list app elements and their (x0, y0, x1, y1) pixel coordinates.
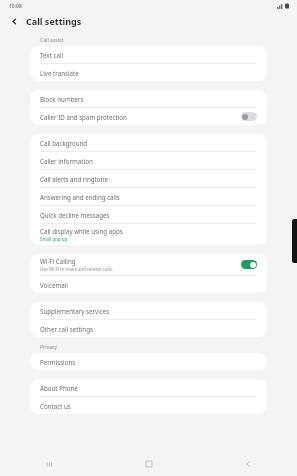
button[interactable]: Permissions (30, 353, 267, 370)
button[interactable]: Contact us (30, 397, 267, 414)
staticText: Supplementary services (40, 307, 110, 315)
staticText: Quick decline messages (40, 211, 110, 219)
staticText: Live translate (40, 69, 79, 77)
staticText: 10:08 (9, 3, 22, 10)
button[interactable]: Answering and ending calls (30, 188, 267, 205)
button[interactable]: Call background (30, 134, 267, 151)
button[interactable]: Other call settings (30, 320, 267, 337)
staticText: Small pop-up (40, 236, 68, 242)
button[interactable]: Quick decline messages (30, 206, 267, 223)
button[interactable]: Back (7, 14, 22, 29)
button[interactable]: Text call (30, 46, 267, 63)
button[interactable]: Voicemail (30, 276, 267, 293)
button[interactable]: Supplementary services (30, 302, 267, 319)
staticText: Privacy (40, 344, 58, 351)
button[interactable]: Caller information (30, 152, 267, 169)
staticText: Permissions (40, 358, 76, 366)
staticText: Block numbers (40, 95, 84, 103)
button[interactable]: Caller ID and spam protection (30, 108, 267, 125)
button[interactable]: Switch on (241, 260, 257, 269)
button[interactable]: Wi-Fi Calling (30, 254, 267, 275)
staticText: Use Wi-Fi to make and receive calls. (40, 266, 113, 272)
staticText: Call display while using apps (40, 227, 123, 235)
staticText: Caller information (40, 157, 93, 165)
staticText: Contact us (40, 402, 71, 410)
button[interactable]: Call display while using apps (30, 224, 267, 245)
button[interactable]: Block numbers (30, 90, 267, 107)
staticText: Caller ID and spam protection (40, 113, 127, 121)
button[interactable]: About Phone (30, 379, 267, 396)
staticText: Voicemail (40, 281, 68, 289)
staticText: Answering and ending calls (40, 193, 120, 201)
button[interactable]: Switch off (241, 112, 257, 121)
button[interactable]: Call alerts and ringtone (30, 170, 267, 187)
staticText: Wi-Fi Calling (40, 257, 76, 265)
button[interactable]: Recent apps (0, 452, 99, 476)
staticText: About Phone (40, 384, 78, 392)
staticText: Text call (40, 51, 64, 59)
staticText: Call alerts and ringtone (40, 175, 108, 183)
staticText: Call background (40, 139, 88, 147)
staticText: Call settings (26, 15, 82, 27)
button[interactable]: Home (99, 452, 198, 476)
staticText: Call assist (40, 37, 64, 44)
button[interactable]: Live translate (30, 64, 267, 81)
staticText: Other call settings (40, 325, 93, 333)
